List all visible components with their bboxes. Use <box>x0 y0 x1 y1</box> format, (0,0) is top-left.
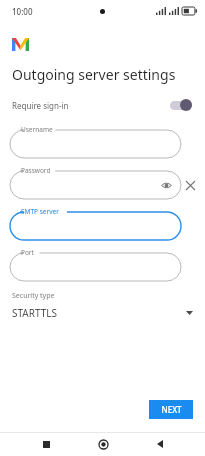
staticText: 10:00 <box>12 6 33 17</box>
staticText: NEXT <box>161 404 182 415</box>
staticText: Username <box>21 125 53 134</box>
button[interactable]: Password <box>10 165 181 199</box>
button[interactable]: Require sign-in <box>0 94 205 116</box>
staticText: SMTP server <box>21 207 59 216</box>
button[interactable]: Back <box>148 432 172 456</box>
staticText: Password <box>21 166 51 175</box>
button[interactable]: Show password <box>159 178 173 192</box>
staticText: Security type <box>12 291 55 301</box>
staticText: Port <box>21 248 34 257</box>
staticText: Require sign-in <box>12 100 69 111</box>
button[interactable]: Clear <box>181 176 199 194</box>
button[interactable]: SMTP server <box>10 206 181 240</box>
button[interactable]: Recents <box>34 432 58 456</box>
staticText: Outgoing server settings <box>12 65 176 84</box>
button[interactable]: Security type <box>0 291 205 320</box>
button[interactable]: Port <box>10 247 181 281</box>
button[interactable]: Username <box>10 124 181 158</box>
staticText: STARTTLS <box>12 306 58 320</box>
button[interactable]: Home <box>91 432 115 456</box>
button[interactable]: NEXT <box>149 400 193 419</box>
